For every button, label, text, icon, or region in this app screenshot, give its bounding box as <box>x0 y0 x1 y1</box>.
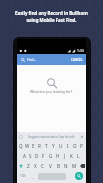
button[interactable]: X <box>32 161 39 171</box>
button[interactable]: T <box>43 141 50 151</box>
staticText: B <box>57 163 60 169</box>
button[interactable]: S <box>27 151 33 161</box>
staticText: U <box>59 143 63 149</box>
button[interactable]: M <box>70 161 78 171</box>
staticText: C <box>41 163 44 169</box>
button[interactable]: L <box>75 151 82 161</box>
staticText: using Mobile Fast Find. <box>26 17 77 23</box>
button[interactable]: More <box>80 135 84 139</box>
button[interactable]: U <box>57 141 64 151</box>
staticText: V <box>49 163 52 169</box>
staticText: S <box>29 153 32 159</box>
button[interactable]: C <box>39 161 46 171</box>
staticText: N <box>64 163 68 169</box>
staticText: H <box>56 153 60 159</box>
button[interactable]: , <box>28 169 38 183</box>
staticText: Q <box>19 143 23 149</box>
button[interactable]: H <box>54 151 61 161</box>
button[interactable]: R <box>36 141 43 151</box>
staticText: M <box>72 163 77 169</box>
staticText: Y <box>52 143 55 149</box>
staticText: E <box>32 143 35 149</box>
button[interactable]: O <box>71 141 78 151</box>
button[interactable]: Find... <box>17 54 86 65</box>
button[interactable]: Backspace <box>78 161 86 171</box>
button[interactable]: J <box>61 151 68 161</box>
button[interactable]: E <box>30 141 36 151</box>
staticText: I <box>67 143 69 149</box>
button[interactable]: Y <box>50 141 57 151</box>
staticText: ?123 <box>20 174 26 178</box>
staticText: . <box>68 174 70 179</box>
staticText: L <box>77 153 80 159</box>
button[interactable]: W <box>24 141 30 151</box>
button[interactable]: D <box>33 151 40 161</box>
staticText: CANCEL <box>71 58 83 62</box>
staticText: , <box>32 174 34 179</box>
button[interactable]: Search <box>72 169 86 183</box>
button[interactable]: B <box>54 161 62 171</box>
button[interactable]: G <box>47 151 54 161</box>
staticText: K <box>70 153 73 159</box>
button[interactable]: Q <box>18 141 24 151</box>
staticText: Z <box>27 163 30 169</box>
button[interactable]: N <box>62 161 70 171</box>
staticText: 1:34 <box>77 48 84 53</box>
button[interactable]: Clipboard <box>19 135 23 139</box>
staticText: D <box>35 153 39 159</box>
button[interactable]: K <box>68 151 75 161</box>
staticText: R <box>38 143 41 149</box>
staticText: P <box>80 143 83 149</box>
button[interactable]: A <box>21 151 27 161</box>
button[interactable]: F <box>40 151 47 161</box>
staticText: T <box>45 143 48 149</box>
staticText: Find... <box>27 58 36 62</box>
button[interactable]: Suggest content when I tap for info <box>17 132 86 141</box>
button[interactable]: V <box>46 161 54 171</box>
staticText: F <box>42 153 45 159</box>
staticText: J <box>64 153 66 159</box>
button[interactable]: ?123 <box>17 169 28 183</box>
staticText: A <box>23 153 26 159</box>
button[interactable]: Z <box>25 161 32 171</box>
staticText: O <box>73 143 77 149</box>
button[interactable]: CANCEL <box>71 58 83 62</box>
staticText: W <box>25 143 30 149</box>
staticText: Easily find any Record in Bullhorn <box>15 10 88 16</box>
staticText: What are you looking for? <box>30 89 73 94</box>
button[interactable]: I <box>64 141 71 151</box>
staticText: X <box>34 163 37 169</box>
button[interactable]: P <box>78 141 85 151</box>
staticText: Suggest content when I tap for info <box>28 135 75 139</box>
staticText: G <box>49 153 53 159</box>
button[interactable]: Shift <box>17 161 25 171</box>
